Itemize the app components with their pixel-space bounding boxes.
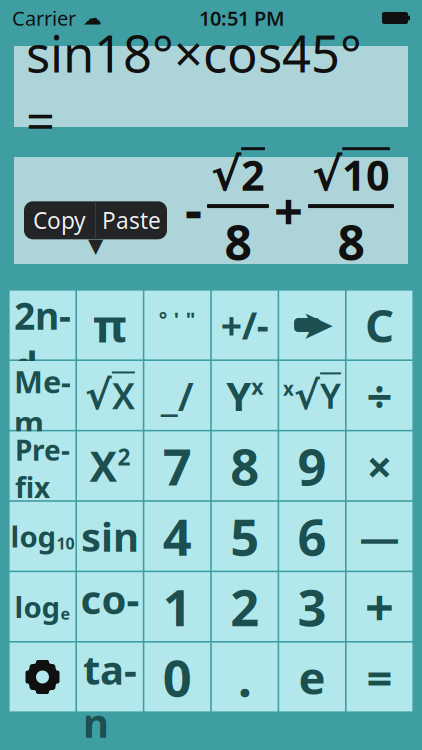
button[interactable]: 6 xyxy=(279,502,345,571)
staticText: 2 xyxy=(117,442,130,472)
button[interactable]: +/- xyxy=(212,291,278,359)
button[interactable]: X root of Y xyxy=(279,361,345,430)
button[interactable]: Memory xyxy=(10,361,75,430)
button[interactable]: cos xyxy=(77,572,143,641)
staticText: ' xyxy=(174,306,179,332)
staticText: Y xyxy=(320,372,341,418)
button[interactable]: Minus xyxy=(347,502,412,571)
staticText: . xyxy=(238,643,252,711)
staticText: ▼ xyxy=(88,234,103,257)
button[interactable]: Fraction xyxy=(144,361,210,430)
staticText: ° xyxy=(159,306,167,332)
staticText: 10 xyxy=(342,147,390,202)
staticText: — xyxy=(359,510,399,563)
staticText: Copy xyxy=(33,205,86,235)
staticText: Carrier xyxy=(12,5,76,31)
staticText: √ xyxy=(294,373,320,417)
staticText: +/- xyxy=(221,300,269,350)
staticText: 7 xyxy=(163,432,192,499)
staticText: X xyxy=(89,438,117,493)
staticText: 2nd xyxy=(14,291,71,359)
staticText: " xyxy=(186,306,196,332)
button[interactable]: Equals xyxy=(347,643,412,711)
button[interactable]: 4 xyxy=(144,502,210,571)
staticText: 0 xyxy=(163,643,192,711)
button[interactable]: Divide xyxy=(347,361,412,430)
staticText: 1 xyxy=(163,573,192,640)
button[interactable]: Plus xyxy=(347,572,412,641)
staticText: x xyxy=(283,376,294,401)
staticText: + xyxy=(274,177,303,244)
staticText: x xyxy=(251,372,263,400)
staticText: ➤ xyxy=(301,302,335,348)
button[interactable]: 1 xyxy=(144,572,210,641)
staticText: e xyxy=(299,647,326,707)
button[interactable]: Copy xyxy=(24,201,95,239)
button[interactable]: Settings xyxy=(10,643,75,711)
staticText: 9 xyxy=(298,432,327,499)
button[interactable]: π xyxy=(77,291,143,359)
button[interactable]: Paste xyxy=(96,201,167,239)
button[interactable]: 5 xyxy=(212,502,278,571)
staticText: _/ xyxy=(161,369,194,422)
staticText: 8 xyxy=(230,432,259,499)
staticText: ☁ xyxy=(83,7,102,29)
staticText: √ xyxy=(211,149,241,200)
staticText: ÷ xyxy=(366,365,392,425)
staticText: + xyxy=(365,573,394,640)
staticText: - xyxy=(185,173,202,244)
staticText: √ xyxy=(85,373,112,418)
staticText: 6 xyxy=(298,503,327,570)
staticText: 2 xyxy=(230,573,259,640)
staticText: tan xyxy=(83,643,137,711)
staticText: 10 xyxy=(56,533,74,554)
staticText: 10:51 PM xyxy=(199,5,285,31)
button[interactable]: 3 xyxy=(279,572,345,641)
button[interactable]: Log base 10 xyxy=(10,502,75,571)
staticText: × xyxy=(366,436,392,496)
staticText: Mem xyxy=(14,361,71,430)
staticText: 2 xyxy=(241,147,265,202)
staticText: C xyxy=(365,295,394,355)
staticText: 8 xyxy=(224,210,251,274)
button[interactable]: 7 xyxy=(144,431,210,500)
staticText: Paste xyxy=(102,205,161,235)
button[interactable]: Degrees minutes seconds xyxy=(144,291,210,359)
button[interactable]: 8 xyxy=(212,431,278,500)
staticText: = xyxy=(366,647,392,707)
button[interactable]: Clear xyxy=(347,291,412,359)
button[interactable]: Natural log xyxy=(10,572,75,641)
button[interactable]: Prefix xyxy=(10,431,75,500)
staticText: sin xyxy=(81,510,139,563)
staticText: Prefix xyxy=(15,431,70,500)
staticText: 8 xyxy=(337,210,364,274)
staticText: log xyxy=(10,517,56,556)
button[interactable]: Multiply xyxy=(347,431,412,500)
staticText: Y xyxy=(226,369,251,422)
button[interactable]: X squared xyxy=(77,431,143,500)
button[interactable]: sin xyxy=(77,502,143,571)
staticText: π xyxy=(93,295,127,355)
button[interactable]: tan xyxy=(77,643,143,711)
staticText: log xyxy=(14,587,60,626)
staticText: 3 xyxy=(298,573,327,640)
staticText: 5 xyxy=(230,503,259,570)
staticText: 4 xyxy=(163,503,192,570)
staticText: sin18°×cos45°= xyxy=(26,19,362,154)
staticText: cos xyxy=(80,572,139,641)
button[interactable]: Square root of X xyxy=(77,361,143,430)
staticText: e xyxy=(60,603,70,624)
button[interactable]: 0 xyxy=(144,643,210,711)
button[interactable]: Y to the power of X xyxy=(212,361,278,430)
button[interactable]: 9 xyxy=(279,431,345,500)
button[interactable]: Enter xyxy=(279,291,345,359)
staticText: √ xyxy=(312,149,342,200)
button[interactable]: 2 xyxy=(212,572,278,641)
button[interactable]: 2nd xyxy=(10,291,75,359)
staticText: X xyxy=(112,371,135,419)
button[interactable]: e xyxy=(279,643,345,711)
button[interactable]: Decimal point xyxy=(212,643,278,711)
